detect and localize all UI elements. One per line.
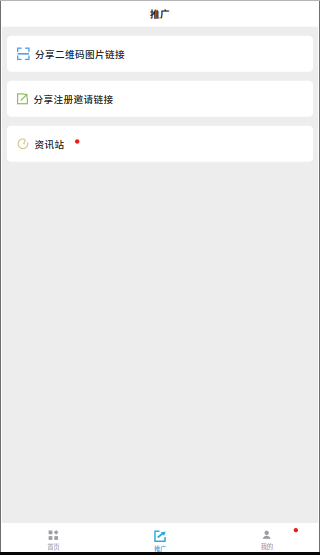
button[interactable]: 首页	[0, 523, 107, 552]
button[interactable]: 分享二维码图片链接	[7, 36, 313, 72]
staticText: 资讯站	[34, 137, 64, 151]
staticText: 推广	[150, 6, 170, 20]
button[interactable]: 资讯站	[7, 126, 313, 162]
button[interactable]: 我的	[213, 523, 320, 552]
button[interactable]: 推广	[107, 523, 213, 552]
button[interactable]: 分享注册邀请链接	[7, 81, 313, 117]
staticText: 分享注册邀请链接	[33, 92, 113, 106]
staticText: 分享二维码图片链接	[35, 47, 125, 61]
staticText: 我的	[261, 541, 273, 551]
staticText: 首页	[47, 542, 59, 551]
staticText: 推广	[154, 544, 166, 553]
